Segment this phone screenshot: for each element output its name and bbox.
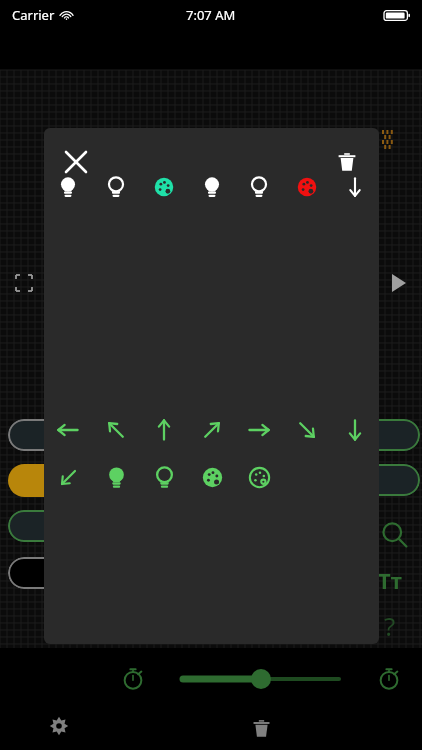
button[interactable]: Settings bbox=[40, 707, 78, 745]
button[interactable]: Timer start bbox=[115, 661, 151, 697]
button[interactable]: fir bbox=[8, 419, 128, 451]
button[interactable]: bulbO bbox=[237, 165, 281, 209]
button[interactable]: palO bbox=[237, 455, 281, 499]
other: Search bbox=[378, 518, 412, 552]
button[interactable]: Direction 3 bbox=[190, 408, 234, 452]
button[interactable]: Close bbox=[52, 138, 100, 186]
button[interactable]: palF bbox=[190, 455, 234, 499]
staticText: ? bbox=[384, 608, 396, 643]
button[interactable]: bulbF bbox=[190, 165, 234, 209]
button[interactable]: Direction 6 bbox=[333, 408, 377, 452]
button[interactable]: bulbO bbox=[94, 165, 138, 209]
button[interactable]: Speed bbox=[175, 661, 347, 697]
button[interactable]: bulbF bbox=[94, 455, 138, 499]
button[interactable]: Direction 5 bbox=[285, 408, 329, 452]
button[interactable]: L bbox=[8, 510, 128, 542]
button[interactable]: Direction 4 bbox=[237, 408, 281, 452]
button[interactable] bbox=[330, 464, 420, 496]
button[interactable] bbox=[8, 557, 128, 589]
button[interactable]: palTeal bbox=[142, 165, 186, 209]
button[interactable]: bulbO bbox=[142, 455, 186, 499]
button[interactable] bbox=[8, 464, 128, 497]
button[interactable]: bulbF bbox=[46, 165, 90, 209]
button[interactable]: arrowDown bbox=[333, 165, 377, 209]
button[interactable]: Direction 0 bbox=[46, 408, 90, 452]
button[interactable]: arrow135 bbox=[46, 455, 90, 499]
button[interactable]: Direction 2 bbox=[142, 408, 186, 452]
staticText: 7:07 AM bbox=[186, 6, 236, 24]
button[interactable]: Timer end bbox=[371, 661, 407, 697]
button[interactable]: Delete bbox=[323, 138, 371, 186]
button[interactable]: palRed bbox=[285, 165, 329, 209]
staticText: Tт bbox=[378, 565, 402, 595]
button[interactable]: Delete all bbox=[242, 709, 280, 747]
button[interactable] bbox=[330, 419, 420, 451]
staticText: Carrier bbox=[12, 6, 55, 24]
button[interactable]: Direction 1 bbox=[94, 408, 138, 452]
staticText: fir bbox=[61, 426, 75, 444]
